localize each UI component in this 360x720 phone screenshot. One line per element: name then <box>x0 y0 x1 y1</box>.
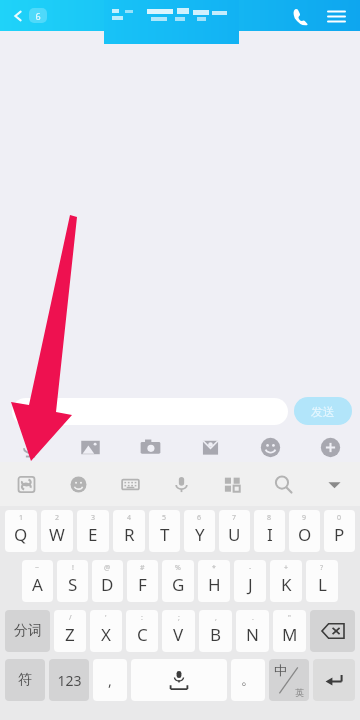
staticText: + <box>284 563 289 573</box>
staticText: 7 <box>232 513 237 523</box>
button[interactable]: ; <box>162 610 195 652</box>
staticText: . <box>252 613 254 623</box>
button[interactable]: : <box>126 610 158 652</box>
button[interactable]: Panel <box>207 462 258 506</box>
staticText: 2 <box>55 513 60 523</box>
staticText: W <box>49 523 65 546</box>
button[interactable]: , <box>199 610 232 652</box>
button[interactable]: * <box>198 560 230 602</box>
staticText: G <box>172 573 185 596</box>
button[interactable]: Red packet <box>180 432 240 462</box>
staticText: : <box>141 613 143 623</box>
staticText: , <box>215 613 217 623</box>
button[interactable]: Backspace <box>310 610 355 652</box>
staticText: L <box>318 573 327 596</box>
button[interactable]: / <box>54 610 86 652</box>
button[interactable]: " <box>273 610 306 652</box>
staticText: Z <box>65 623 75 646</box>
staticText: , <box>108 671 112 690</box>
button[interactable]: 分词 <box>5 610 50 652</box>
button[interactable]: 5 <box>149 510 180 552</box>
staticText: U <box>228 523 241 546</box>
staticText: 6 <box>35 10 41 22</box>
button[interactable]: 7 <box>219 510 250 552</box>
button[interactable]: 符 <box>5 659 45 701</box>
staticText: A <box>32 573 43 596</box>
staticText: O <box>298 523 312 546</box>
button[interactable]: + <box>270 560 302 602</box>
button[interactable]: Search <box>258 462 309 506</box>
button[interactable]: 2 <box>41 510 73 552</box>
staticText: K <box>281 573 292 596</box>
button[interactable]: Space <box>131 659 227 701</box>
staticText: - <box>249 563 252 573</box>
button[interactable]: Camera <box>120 432 180 462</box>
staticText: / <box>69 613 72 623</box>
button[interactable]: ! <box>57 560 88 602</box>
button[interactable]: 发送 <box>294 397 352 425</box>
staticText: C <box>137 623 148 646</box>
staticText: I <box>267 523 273 546</box>
staticText: # <box>140 563 145 573</box>
button[interactable]: 1 <box>5 510 37 552</box>
staticText: S <box>68 573 78 596</box>
staticText: F <box>138 573 147 596</box>
button[interactable]: 4 <box>113 510 145 552</box>
button[interactable]: 0 <box>324 510 355 552</box>
staticText: 中 <box>274 662 287 678</box>
staticText: 123 <box>57 671 82 690</box>
staticText: ~ <box>35 563 40 573</box>
button[interactable]: . <box>236 610 269 652</box>
button[interactable]: @ <box>92 560 123 602</box>
button[interactable]: 9 <box>289 510 320 552</box>
staticText: P <box>334 523 345 546</box>
button[interactable]: More <box>300 432 360 462</box>
button[interactable]: Emoji <box>52 462 104 506</box>
button[interactable]: Back <box>9 5 50 26</box>
staticText: ? <box>320 563 324 573</box>
button[interactable]: Sticker <box>240 432 300 462</box>
staticText: T <box>160 523 170 546</box>
button[interactable]: , <box>93 659 127 701</box>
staticText: 符 <box>18 671 32 689</box>
staticText: 9 <box>302 513 307 523</box>
button[interactable]: Call <box>285 1 315 31</box>
staticText: Y <box>195 523 205 546</box>
staticText: V <box>173 623 184 646</box>
button[interactable]: Voice input <box>156 462 207 506</box>
staticText: 发送 <box>311 404 335 419</box>
staticText: X <box>101 623 111 646</box>
staticText: 3 <box>91 513 96 523</box>
staticText: B <box>210 623 222 646</box>
staticText: H <box>208 573 221 596</box>
button[interactable]: ? <box>306 560 338 602</box>
button[interactable]: Keyboard <box>104 462 156 506</box>
button[interactable] <box>12 398 288 425</box>
staticText: 6 <box>197 513 202 523</box>
button[interactable]: 6 <box>184 510 215 552</box>
button[interactable]: Chinese English toggle <box>269 659 309 701</box>
staticText: 8 <box>267 513 272 523</box>
button[interactable]: Menu <box>321 1 351 31</box>
button[interactable]: Voice <box>0 432 60 462</box>
staticText: E <box>88 523 98 546</box>
button[interactable]: Photo <box>60 432 120 462</box>
button[interactable]: Hide <box>309 462 360 506</box>
button[interactable]: # <box>127 560 158 602</box>
button[interactable]: 。 <box>231 659 265 701</box>
staticText: @ <box>104 563 111 573</box>
button[interactable]: Sogou <box>0 462 52 506</box>
button[interactable]: 123 <box>49 659 89 701</box>
button[interactable]: Enter <box>313 659 355 701</box>
button[interactable]: 8 <box>254 510 285 552</box>
button[interactable]: ' <box>90 610 122 652</box>
button[interactable]: % <box>162 560 194 602</box>
button[interactable]: ~ <box>22 560 53 602</box>
staticText: ! <box>72 563 74 573</box>
button[interactable]: - <box>234 560 266 602</box>
staticText: % <box>175 563 181 573</box>
staticText: ' <box>105 613 107 623</box>
button[interactable]: 3 <box>77 510 109 552</box>
staticText: R <box>124 523 135 546</box>
staticText: ; <box>178 613 180 623</box>
